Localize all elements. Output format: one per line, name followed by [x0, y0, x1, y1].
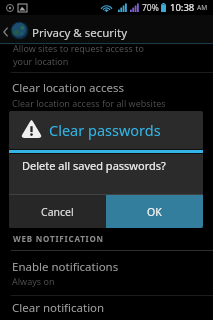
staticText: 10:38	[170, 1, 195, 14]
staticText: Cancel	[41, 205, 74, 219]
staticText: WEB NOTIFICATION	[13, 233, 104, 244]
staticText: 70%	[142, 2, 159, 14]
button[interactable]: Clear location access	[0, 74, 213, 108]
staticText: Delete all saved passwords?	[22, 158, 166, 173]
button[interactable]: Enable notifications	[0, 252, 213, 293]
button[interactable]: OK	[106, 195, 203, 228]
staticText: AM	[197, 3, 208, 12]
staticText: Enable notifications	[12, 259, 119, 275]
staticText: Always on	[12, 275, 55, 287]
staticText: Clear notification	[12, 300, 105, 316]
staticText: Clear passwords	[49, 120, 161, 140]
staticText: Clear location access for all websites	[12, 97, 166, 109]
staticText: your location	[13, 55, 69, 67]
button[interactable]: Allow sites to request access to	[0, 44, 213, 71]
staticText: Allow sites to request access to	[13, 42, 144, 54]
staticText: Privacy & security	[32, 25, 128, 41]
staticText: Clear location access	[12, 80, 124, 96]
button[interactable]: Clear notification	[0, 296, 213, 320]
button[interactable]: Cancel	[9, 195, 106, 228]
staticText: OK	[147, 205, 162, 219]
button[interactable]: Back	[0, 15, 11, 43]
